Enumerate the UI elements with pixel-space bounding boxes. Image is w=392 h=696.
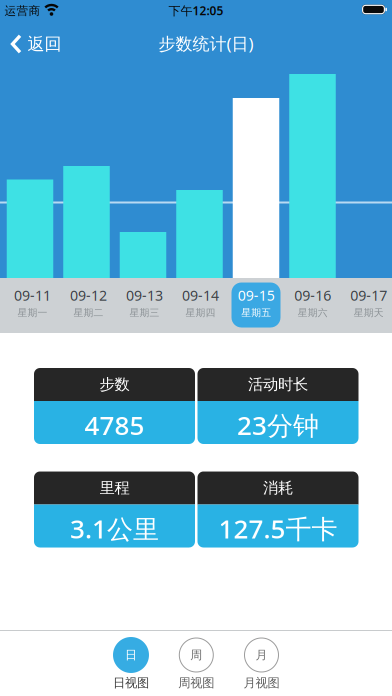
button[interactable]: 09-11 bbox=[5, 280, 59, 330]
staticText: 月 bbox=[255, 647, 267, 662]
button[interactable]: 09-16 bbox=[286, 280, 340, 330]
staticText: 运营商 bbox=[4, 4, 40, 18]
staticText: 步数统计(日) bbox=[158, 32, 253, 55]
staticText: 23分钟 bbox=[237, 407, 319, 443]
button[interactable]: 09-17 bbox=[342, 280, 392, 330]
staticText: 09-16 bbox=[294, 285, 331, 305]
button[interactable]: 月 bbox=[230, 637, 292, 696]
staticText: 127.5千卡 bbox=[218, 511, 337, 546]
staticText: 星期一 bbox=[17, 307, 47, 319]
staticText: 日 bbox=[125, 647, 137, 662]
staticText: 09-17 bbox=[350, 285, 387, 305]
staticText: 星期四 bbox=[185, 307, 215, 319]
staticText: 下午12:05 bbox=[168, 2, 223, 19]
staticText: 09-11 bbox=[14, 285, 51, 305]
button[interactable]: 周 bbox=[165, 637, 227, 696]
button[interactable]: 返回 bbox=[10, 27, 61, 61]
staticText: 周 bbox=[190, 647, 202, 662]
staticText: 步数 bbox=[99, 375, 129, 394]
staticText: 09-15 bbox=[238, 285, 275, 305]
staticText: 消耗 bbox=[263, 478, 293, 498]
button[interactable]: 09-13 bbox=[117, 280, 171, 330]
staticText: 星期三 bbox=[129, 307, 159, 319]
staticText: 活动时长 bbox=[248, 375, 308, 394]
button[interactable]: 日 bbox=[100, 637, 162, 696]
button[interactable]: 09-14 bbox=[173, 280, 227, 330]
staticText: 月视图 bbox=[243, 675, 279, 691]
staticText: 3.1公里 bbox=[70, 511, 159, 546]
staticText: 星期五 bbox=[241, 307, 271, 319]
staticText: 09-13 bbox=[126, 285, 163, 305]
staticText: 里程 bbox=[99, 478, 129, 498]
staticText: 返回 bbox=[27, 33, 61, 55]
staticText: 日视图 bbox=[113, 675, 149, 691]
staticText: 周视图 bbox=[178, 675, 214, 691]
staticText: 09-14 bbox=[182, 285, 219, 305]
button[interactable]: 09-15 bbox=[229, 280, 283, 330]
button[interactable]: 09-12 bbox=[61, 280, 115, 330]
staticText: 4785 bbox=[84, 407, 144, 443]
staticText: 星期二 bbox=[73, 307, 103, 319]
staticText: 09-12 bbox=[70, 285, 107, 305]
staticText: 星期六 bbox=[298, 307, 328, 319]
staticText: 星期天 bbox=[354, 307, 384, 319]
